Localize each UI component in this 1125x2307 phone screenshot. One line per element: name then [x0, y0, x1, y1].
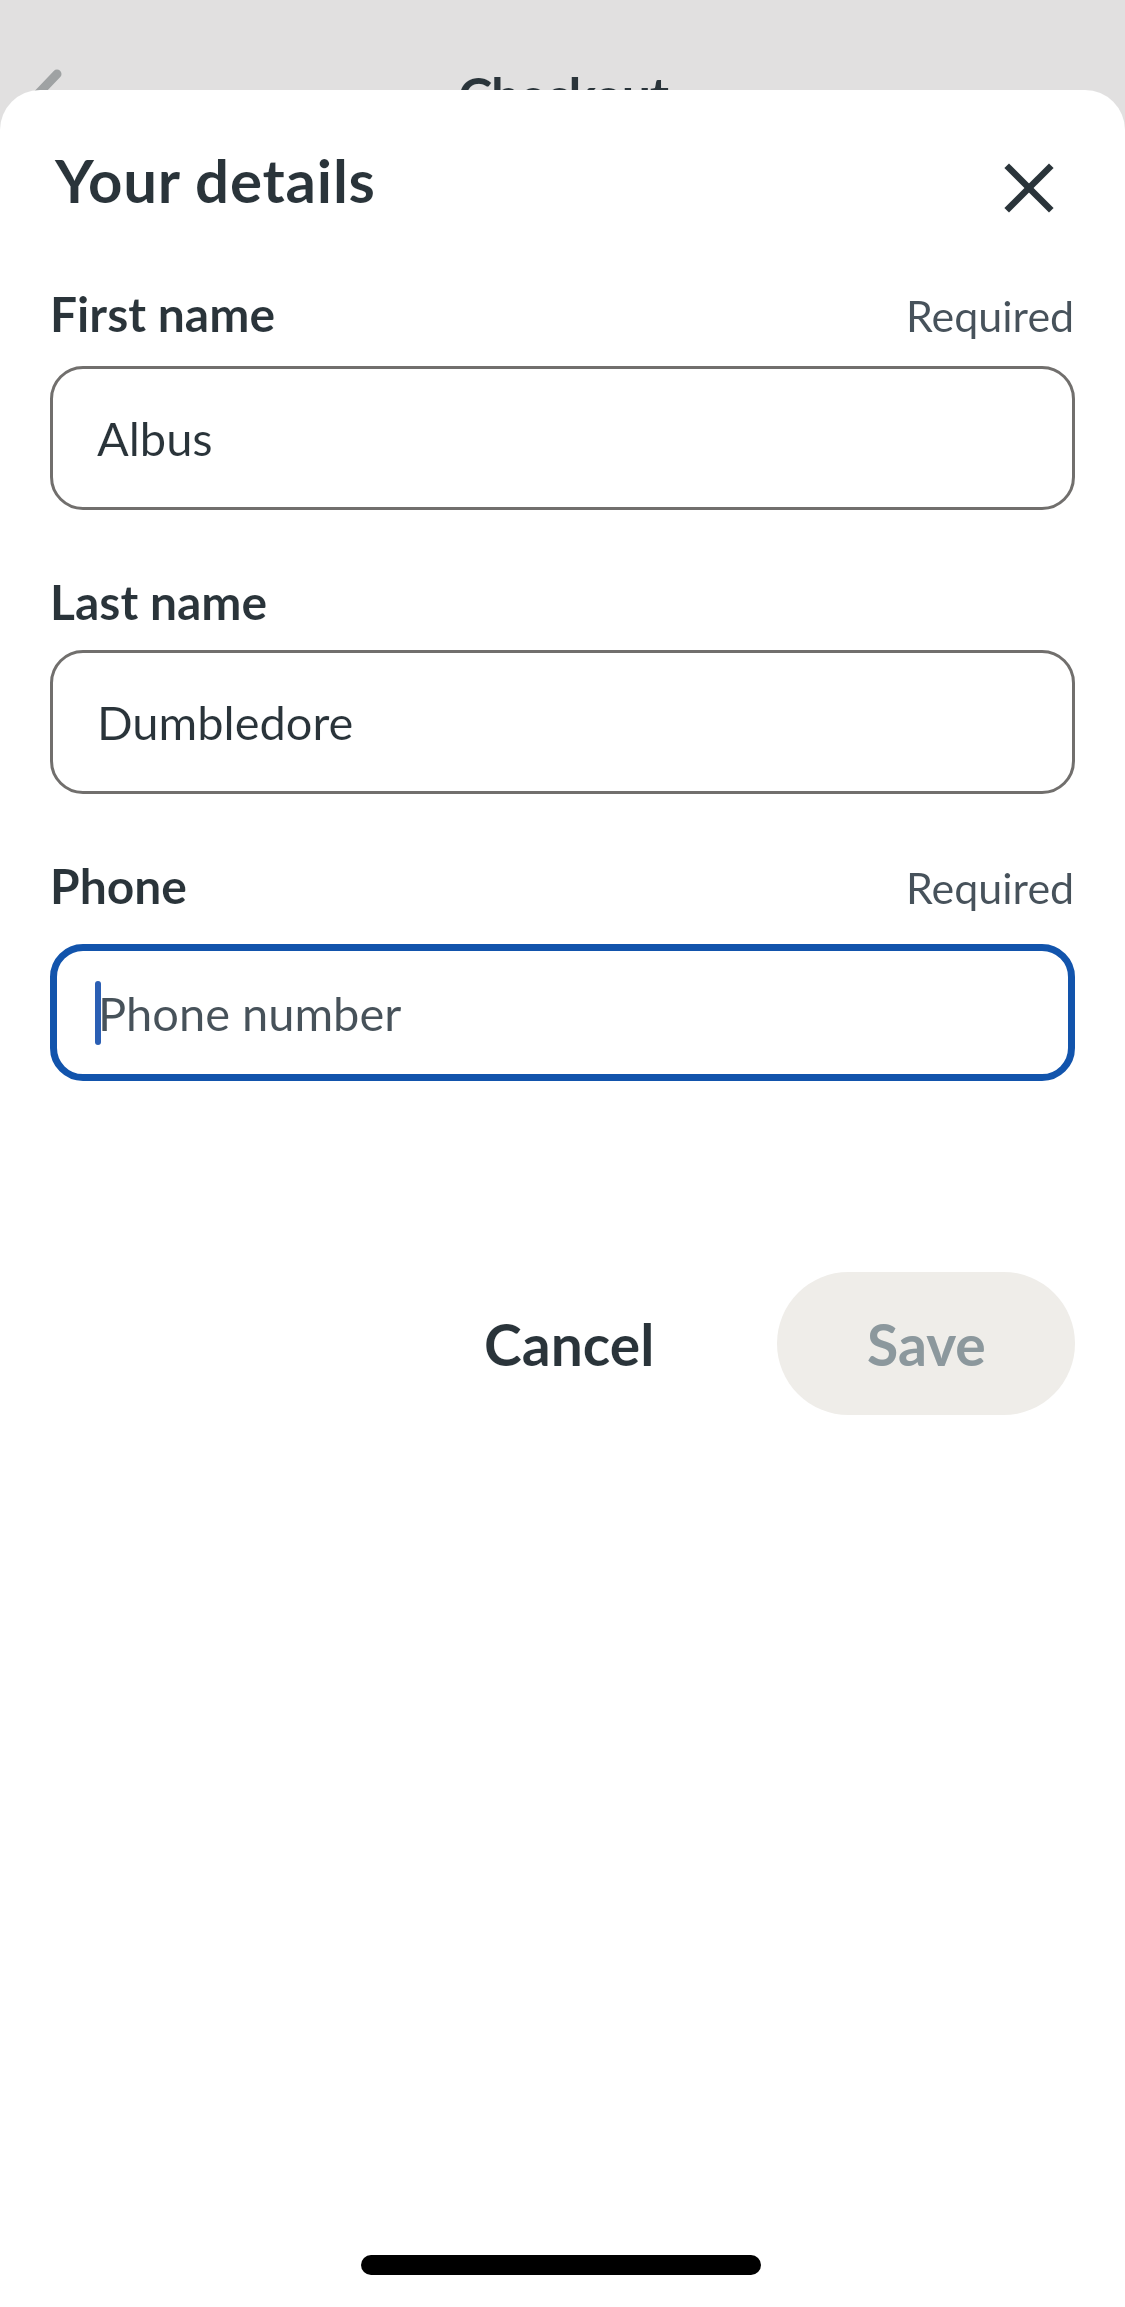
staticText: Checkout — [458, 64, 668, 126]
staticText: Phone number — [98, 985, 402, 1041]
staticText: Required — [906, 862, 1075, 914]
staticText: Cancel — [484, 1310, 655, 1378]
staticText: First name — [50, 285, 276, 343]
button[interactable] — [987, 144, 1071, 228]
staticText: Albus — [97, 410, 213, 466]
staticText: Save — [867, 1310, 986, 1378]
staticText: Required — [906, 290, 1075, 342]
staticText: Dumbledore — [97, 694, 354, 750]
button[interactable]: Cancel — [469, 1272, 669, 1415]
staticText: Last name — [50, 573, 268, 631]
button[interactable]: Save — [777, 1272, 1075, 1415]
staticText: Your details — [55, 144, 376, 216]
button[interactable]: Albus — [50, 366, 1075, 510]
button[interactable]: Dumbledore — [50, 650, 1075, 794]
staticText: Phone — [50, 857, 187, 915]
button[interactable]: Phone number — [50, 944, 1075, 1081]
